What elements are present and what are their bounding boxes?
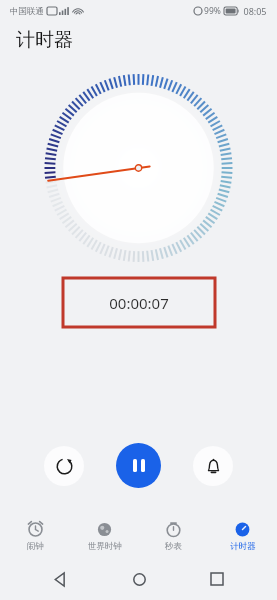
button[interactable]: Alarm sound: [193, 446, 233, 486]
staticText: 计时器: [16, 28, 73, 52]
button[interactable]: 秒表: [139, 514, 208, 558]
button[interactable]: 计时器: [208, 514, 277, 558]
button[interactable]: 00:00:07: [63, 278, 215, 327]
button[interactable]: 世界时钟: [70, 514, 139, 558]
staticText: 08:05: [243, 5, 267, 17]
staticText: 中国联通: [10, 6, 44, 17]
button[interactable]: Home: [121, 564, 157, 594]
staticText: 秒表: [165, 541, 182, 552]
button[interactable]: 闹钟: [0, 514, 70, 558]
button[interactable]: Pause: [116, 443, 161, 488]
staticText: 99%: [204, 5, 221, 17]
staticText: 闹钟: [27, 541, 44, 552]
button[interactable]: Back: [42, 564, 78, 594]
button[interactable]: Recents: [199, 564, 235, 594]
button[interactable]: Reset: [44, 446, 84, 486]
staticText: 世界时钟: [88, 541, 122, 552]
staticText: 00:00:07: [109, 293, 169, 313]
staticText: 计时器: [230, 541, 256, 552]
